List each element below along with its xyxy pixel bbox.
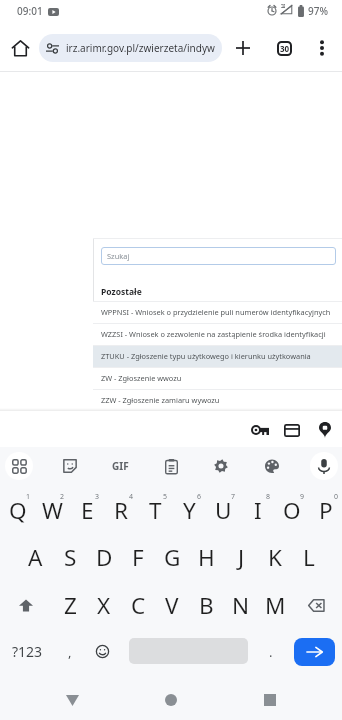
button[interactable]: ZTUKU - Zgłoszenie typu użytkowego i kie…	[93, 345, 342, 367]
staticText: G	[164, 542, 181, 573]
staticText: WPPNSI - Wniosek o przydzielenie puli nu…	[101, 307, 331, 317]
button[interactable]: N	[224, 582, 258, 629]
button[interactable]: Z	[53, 582, 87, 629]
staticText: ZW - Zgłoszenie wwozu	[101, 373, 182, 383]
staticText: 09:01	[17, 4, 43, 18]
button[interactable]: G	[155, 534, 189, 581]
staticText: M	[265, 590, 286, 621]
button[interactable]: Voice input	[310, 452, 338, 480]
staticText: Szukaj	[107, 251, 130, 261]
staticText: Y	[183, 495, 196, 526]
button[interactable]: M	[258, 582, 292, 629]
button[interactable]: Apps	[5, 452, 33, 480]
staticText: 4	[129, 492, 134, 502]
staticText: ZTUKU - Zgłoszenie typu użytkowego i kie…	[101, 351, 311, 361]
staticText: V	[165, 590, 179, 621]
button[interactable]: Home	[6, 34, 34, 62]
button[interactable]: C	[121, 582, 155, 629]
button[interactable]: K	[258, 534, 292, 581]
staticText: Q	[9, 495, 27, 526]
button[interactable]: W	[35, 487, 69, 534]
button[interactable]: Tabs	[270, 34, 298, 62]
button[interactable]: ZW - Zgłoszenie wwozu	[93, 367, 342, 389]
staticText: I	[254, 495, 262, 526]
button[interactable]: H	[189, 534, 223, 581]
staticText: H	[198, 542, 215, 573]
button[interactable]: Shift	[0, 582, 51, 629]
staticText: Pozostałe	[101, 286, 142, 298]
button[interactable]: Enter	[294, 638, 335, 666]
staticText: GIF	[112, 459, 129, 473]
staticText: F	[132, 542, 144, 573]
button[interactable]: More options	[308, 34, 336, 62]
staticText: D	[96, 542, 113, 573]
button[interactable]: A	[18, 534, 52, 581]
button[interactable]: D	[87, 534, 121, 581]
button[interactable]: P	[309, 487, 342, 534]
button[interactable]: WPPNSI - Wniosek o przydzielenie puli nu…	[93, 301, 342, 323]
button[interactable]: WZZSI - Wniosek o zezwolenie na zastąpie…	[93, 323, 342, 345]
staticText: 1	[26, 492, 31, 502]
button[interactable]: O	[275, 487, 309, 534]
button[interactable]: Back	[57, 685, 87, 715]
button[interactable]: GIF	[106, 452, 134, 480]
button[interactable]: Q	[1, 487, 35, 534]
staticText: 5	[163, 492, 168, 502]
staticText: 2	[60, 492, 65, 502]
button[interactable]: Recent apps	[255, 685, 285, 715]
staticText: K	[268, 542, 282, 573]
button[interactable]: ZZW - Zgłoszenie zamiaru wywozu	[93, 389, 342, 411]
staticText: 0	[334, 492, 339, 502]
button[interactable]: Payment methods	[280, 418, 304, 442]
staticText: ZZW - Zgłoszenie zamiaru wywozu	[101, 395, 220, 405]
staticText: X	[97, 590, 111, 621]
button[interactable]: irz.arimr.gov.pl/zwierzeta/indyw	[39, 34, 222, 62]
button[interactable]: I	[241, 487, 275, 534]
staticText: J	[238, 542, 245, 573]
button[interactable]: S	[53, 534, 87, 581]
staticText: S	[64, 542, 77, 573]
staticText: 6	[197, 492, 202, 502]
button[interactable]: B	[189, 582, 223, 629]
staticText: WZZSI - Wniosek o zezwolenie na zastąpie…	[101, 329, 326, 339]
button[interactable]: Y	[172, 487, 206, 534]
staticText: R	[114, 495, 128, 526]
staticText: 97%	[308, 4, 328, 18]
staticText: .	[269, 643, 273, 661]
button[interactable]: L	[292, 534, 326, 581]
button[interactable]: E	[70, 487, 104, 534]
button[interactable]: V	[155, 582, 189, 629]
button[interactable]: J	[224, 534, 258, 581]
staticText: W	[42, 495, 63, 526]
staticText: C	[131, 590, 146, 621]
staticText: ?123	[12, 642, 43, 661]
button[interactable]: Emoji	[88, 628, 117, 675]
staticText: 30	[280, 43, 290, 54]
staticText: A	[28, 542, 43, 573]
button[interactable]: Themes	[258, 452, 286, 480]
button[interactable]: X	[87, 582, 121, 629]
button[interactable]: .	[256, 628, 286, 675]
button[interactable]: Clipboard	[157, 452, 185, 480]
button[interactable]: Passwords	[248, 418, 272, 442]
button[interactable]: R	[104, 487, 138, 534]
button[interactable]: ?123	[0, 628, 55, 675]
staticText: Z	[64, 590, 77, 621]
button[interactable]: Stickers	[56, 452, 84, 480]
button[interactable]: Home	[156, 685, 186, 715]
button[interactable]: Settings	[207, 452, 235, 480]
button[interactable]: New tab	[229, 34, 257, 62]
button[interactable]: Szukaj	[101, 247, 336, 265]
staticText: P	[319, 495, 333, 526]
button[interactable]: F	[121, 534, 155, 581]
staticText: N	[232, 590, 250, 621]
button[interactable]: ,	[55, 628, 85, 675]
staticText: L	[303, 542, 315, 573]
staticText: 9	[300, 492, 305, 502]
button[interactable]: T	[138, 487, 172, 534]
button[interactable]: U	[206, 487, 240, 534]
button[interactable]: Addresses	[313, 418, 337, 442]
staticText: U	[215, 495, 232, 526]
button[interactable]: Backspace	[291, 582, 342, 629]
